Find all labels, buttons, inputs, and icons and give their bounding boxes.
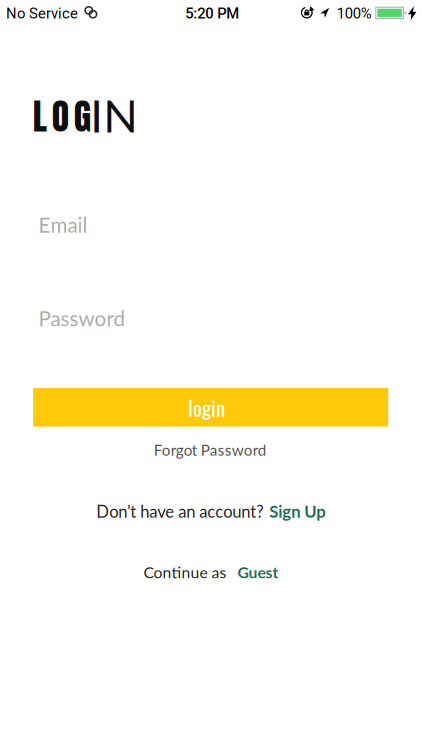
staticText: Password [38,306,124,331]
button[interactable]: Password [38,300,393,336]
staticText: Continue as [143,563,226,582]
staticText: No Service [6,5,78,22]
staticText: Forgot Password [154,441,267,459]
button[interactable]: Email [38,207,393,243]
button[interactable]: Sign Up [269,501,325,521]
staticText: Guest [237,563,278,582]
staticText: 5:20 PM [185,5,239,22]
staticText: L O G [33,89,91,143]
staticText: login [188,392,225,423]
staticText: Email [38,212,87,237]
staticText: IN [90,88,138,142]
staticText: Sign Up [269,501,325,521]
button[interactable]: login [33,388,388,426]
button[interactable]: Forgot Password [154,441,267,459]
staticText: 100% [337,5,372,22]
button[interactable]: Guest [237,563,278,582]
staticText: Don't have an account? [96,501,263,521]
